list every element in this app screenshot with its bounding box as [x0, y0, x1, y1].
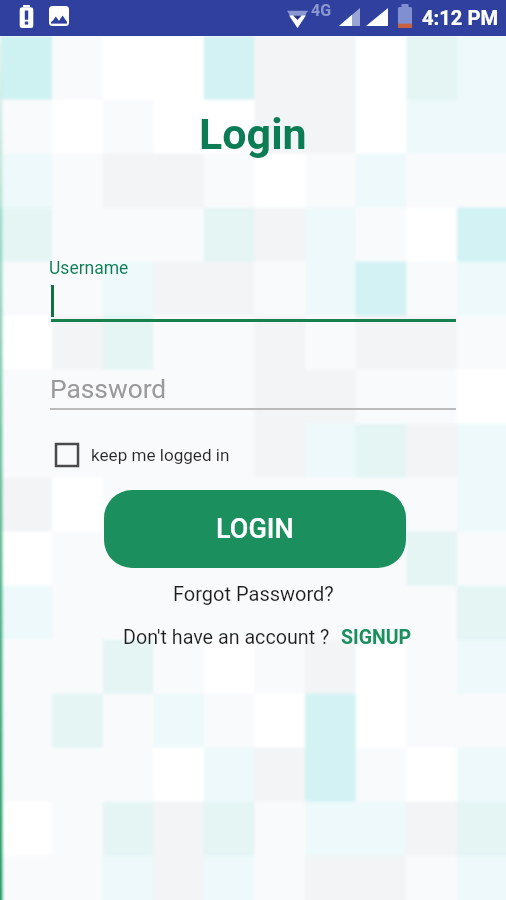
staticText: keep me logged in	[91, 445, 230, 465]
staticText: Login	[199, 109, 307, 159]
button[interactable]: Forgot Password?	[173, 582, 334, 605]
other: Battery alert	[18, 5, 35, 28]
other: Wifi	[287, 7, 308, 28]
staticText: 4:12 PM	[422, 6, 499, 30]
staticText: Don't have an account ?	[123, 626, 330, 649]
button[interactable]: LOGIN	[104, 490, 406, 568]
other: Screenshot	[49, 6, 69, 26]
button[interactable]: keep me logged in	[55, 443, 230, 467]
button[interactable]: SIGNUP	[341, 626, 412, 649]
staticText: Username	[49, 258, 129, 279]
staticText: Password	[50, 374, 167, 405]
staticText: 4G	[311, 1, 332, 20]
other: Battery	[397, 4, 413, 28]
staticText: LOGIN	[216, 513, 294, 545]
